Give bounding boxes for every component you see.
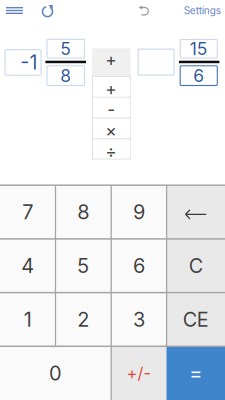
button[interactable]: 1	[0, 293, 55, 346]
button[interactable]: 15	[180, 39, 217, 58]
button[interactable]: 6	[111, 239, 167, 293]
button[interactable]: Backspace	[167, 185, 225, 239]
staticText: 5	[77, 254, 89, 278]
staticText: 6	[133, 254, 145, 278]
staticText: 2	[77, 307, 89, 332]
button[interactable]: -1	[5, 50, 41, 75]
button[interactable]: ÷	[92, 139, 131, 159]
button[interactable]: CE	[167, 293, 225, 346]
staticText: C	[189, 254, 203, 278]
button[interactable]: 0	[0, 346, 111, 400]
staticText: 8	[60, 65, 71, 86]
button[interactable]: =	[167, 346, 225, 400]
staticText: 8	[77, 200, 89, 224]
staticText: -1	[20, 51, 37, 74]
staticText: CE	[183, 307, 209, 331]
button[interactable]: 4	[0, 239, 55, 293]
button[interactable]: Menu	[6, 7, 23, 14]
button[interactable]: 2	[55, 293, 111, 346]
staticText: -	[107, 99, 115, 120]
button[interactable]: 3	[111, 293, 167, 346]
staticText: ×	[105, 120, 117, 141]
staticText: +	[105, 49, 117, 70]
staticText: Settings	[184, 5, 221, 17]
button[interactable]: Undo	[138, 7, 148, 16]
staticText: 3	[133, 307, 145, 332]
button[interactable]: C	[167, 239, 225, 293]
staticText: 4	[21, 254, 34, 278]
staticText: ÷	[105, 141, 117, 162]
button[interactable]: +	[92, 76, 131, 97]
button[interactable]: 8	[55, 185, 111, 239]
button[interactable]: 6	[180, 66, 217, 85]
staticText: 9	[133, 200, 145, 224]
button[interactable]: 5	[47, 39, 84, 58]
button[interactable]: 7	[0, 185, 55, 239]
staticText: 6	[193, 65, 204, 86]
button[interactable]: +	[92, 48, 131, 76]
button[interactable]: Reset	[42, 5, 53, 17]
staticText: 15	[190, 38, 208, 59]
button[interactable]: Settings	[173, 4, 221, 17]
staticText: 0	[49, 361, 62, 385]
button[interactable]: 5	[55, 239, 111, 293]
button[interactable]: ×	[92, 118, 131, 139]
button[interactable]	[138, 49, 174, 75]
button[interactable]: -	[92, 97, 131, 118]
staticText: 5	[60, 38, 71, 59]
staticText: +	[105, 78, 117, 99]
staticText: 7	[22, 200, 33, 224]
staticText: +/-	[126, 363, 151, 383]
button[interactable]: 8	[47, 66, 84, 85]
staticText: =	[189, 361, 202, 385]
staticText: 1	[24, 307, 32, 332]
button[interactable]: +/-	[111, 346, 167, 400]
button[interactable]: 9	[111, 185, 167, 239]
